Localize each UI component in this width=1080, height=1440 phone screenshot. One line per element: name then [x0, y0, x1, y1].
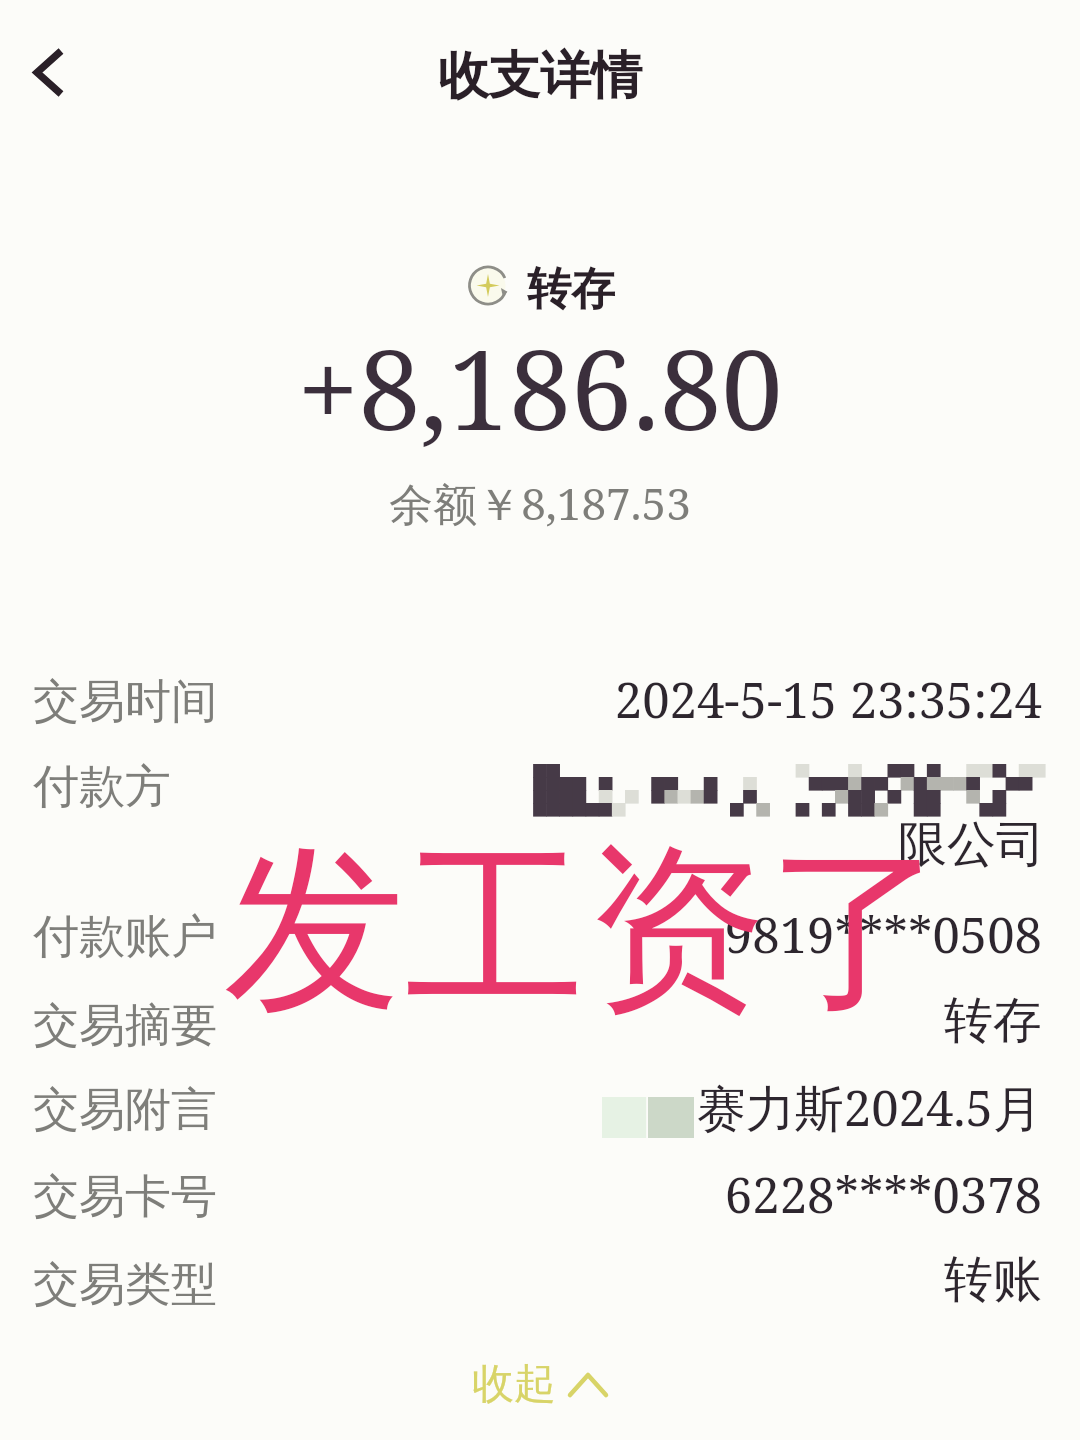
staticText: 2024-5-15 23:35:24	[0, 666, 1042, 733]
staticText: 9819****0508	[0, 901, 1042, 968]
button[interactable]: 付款方	[0, 758, 1080, 878]
staticText: 发工资了	[224, 818, 948, 1046]
staticText: 交易附言	[33, 1081, 217, 1139]
staticText: 转存	[0, 990, 1042, 1052]
button[interactable]: 交易摘要	[0, 997, 1080, 1081]
button[interactable]: 付款账户	[0, 908, 1080, 992]
staticText: 付款账户	[33, 908, 217, 966]
staticText: 转账	[0, 1249, 1042, 1311]
staticText: 余额￥8,187.53	[0, 473, 1080, 533]
button[interactable]: 交易时间	[0, 673, 1080, 757]
staticText: 交易卡号	[33, 1168, 217, 1226]
button[interactable]: 交易卡号	[0, 1168, 1080, 1252]
staticText: 交易摘要	[33, 997, 217, 1055]
staticText: 交易时间	[33, 673, 217, 731]
staticText: 赛力斯2024.5月	[0, 1074, 1042, 1141]
button[interactable]: Back	[13, 36, 85, 108]
staticText: 转存	[527, 262, 615, 317]
staticText: 交易类型	[33, 1256, 217, 1314]
button[interactable]: 交易类型	[0, 1256, 1080, 1340]
staticText: 收支详情	[0, 44, 1080, 108]
staticText: +8,186.80	[0, 312, 1080, 462]
staticText: 限公司	[898, 814, 1045, 876]
button[interactable]: 交易附言	[0, 1081, 1080, 1165]
staticText: 收起	[472, 1358, 556, 1411]
staticText: 付款方	[33, 758, 171, 816]
button[interactable]: Transfer in category	[467, 265, 509, 306]
staticText: 6228****0378	[0, 1161, 1042, 1228]
button[interactable]: 收起	[0, 1358, 1080, 1411]
